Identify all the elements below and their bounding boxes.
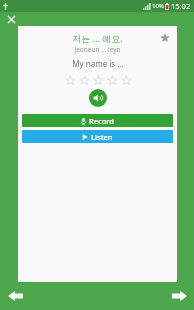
button[interactable]: Listen <box>22 130 173 143</box>
button[interactable]: Close <box>4 12 18 26</box>
button[interactable]: Play pronunciation <box>89 89 107 107</box>
staticText: Record <box>89 116 114 126</box>
staticText: 저는 ... 예요. <box>72 32 123 44</box>
staticText: Listen <box>91 132 113 142</box>
staticText: My name is ... <box>72 58 124 69</box>
button[interactable]: Rate 2 stars <box>77 73 91 87</box>
button[interactable]: Rate 3 stars <box>91 73 105 87</box>
button[interactable]: Rate 1 stars <box>63 73 77 87</box>
button[interactable]: Bookmark <box>157 30 173 46</box>
button[interactable]: Rate 5 stars <box>119 73 133 87</box>
button[interactable]: Rate 4 stars <box>105 73 119 87</box>
button[interactable]: Next <box>167 284 191 308</box>
staticText: 10% <box>152 2 164 10</box>
staticText: jeoneun ... ieyo <box>74 45 121 54</box>
staticText: 15:02 <box>171 1 191 11</box>
button[interactable]: Previous <box>3 284 27 308</box>
button[interactable]: Record <box>22 114 173 127</box>
